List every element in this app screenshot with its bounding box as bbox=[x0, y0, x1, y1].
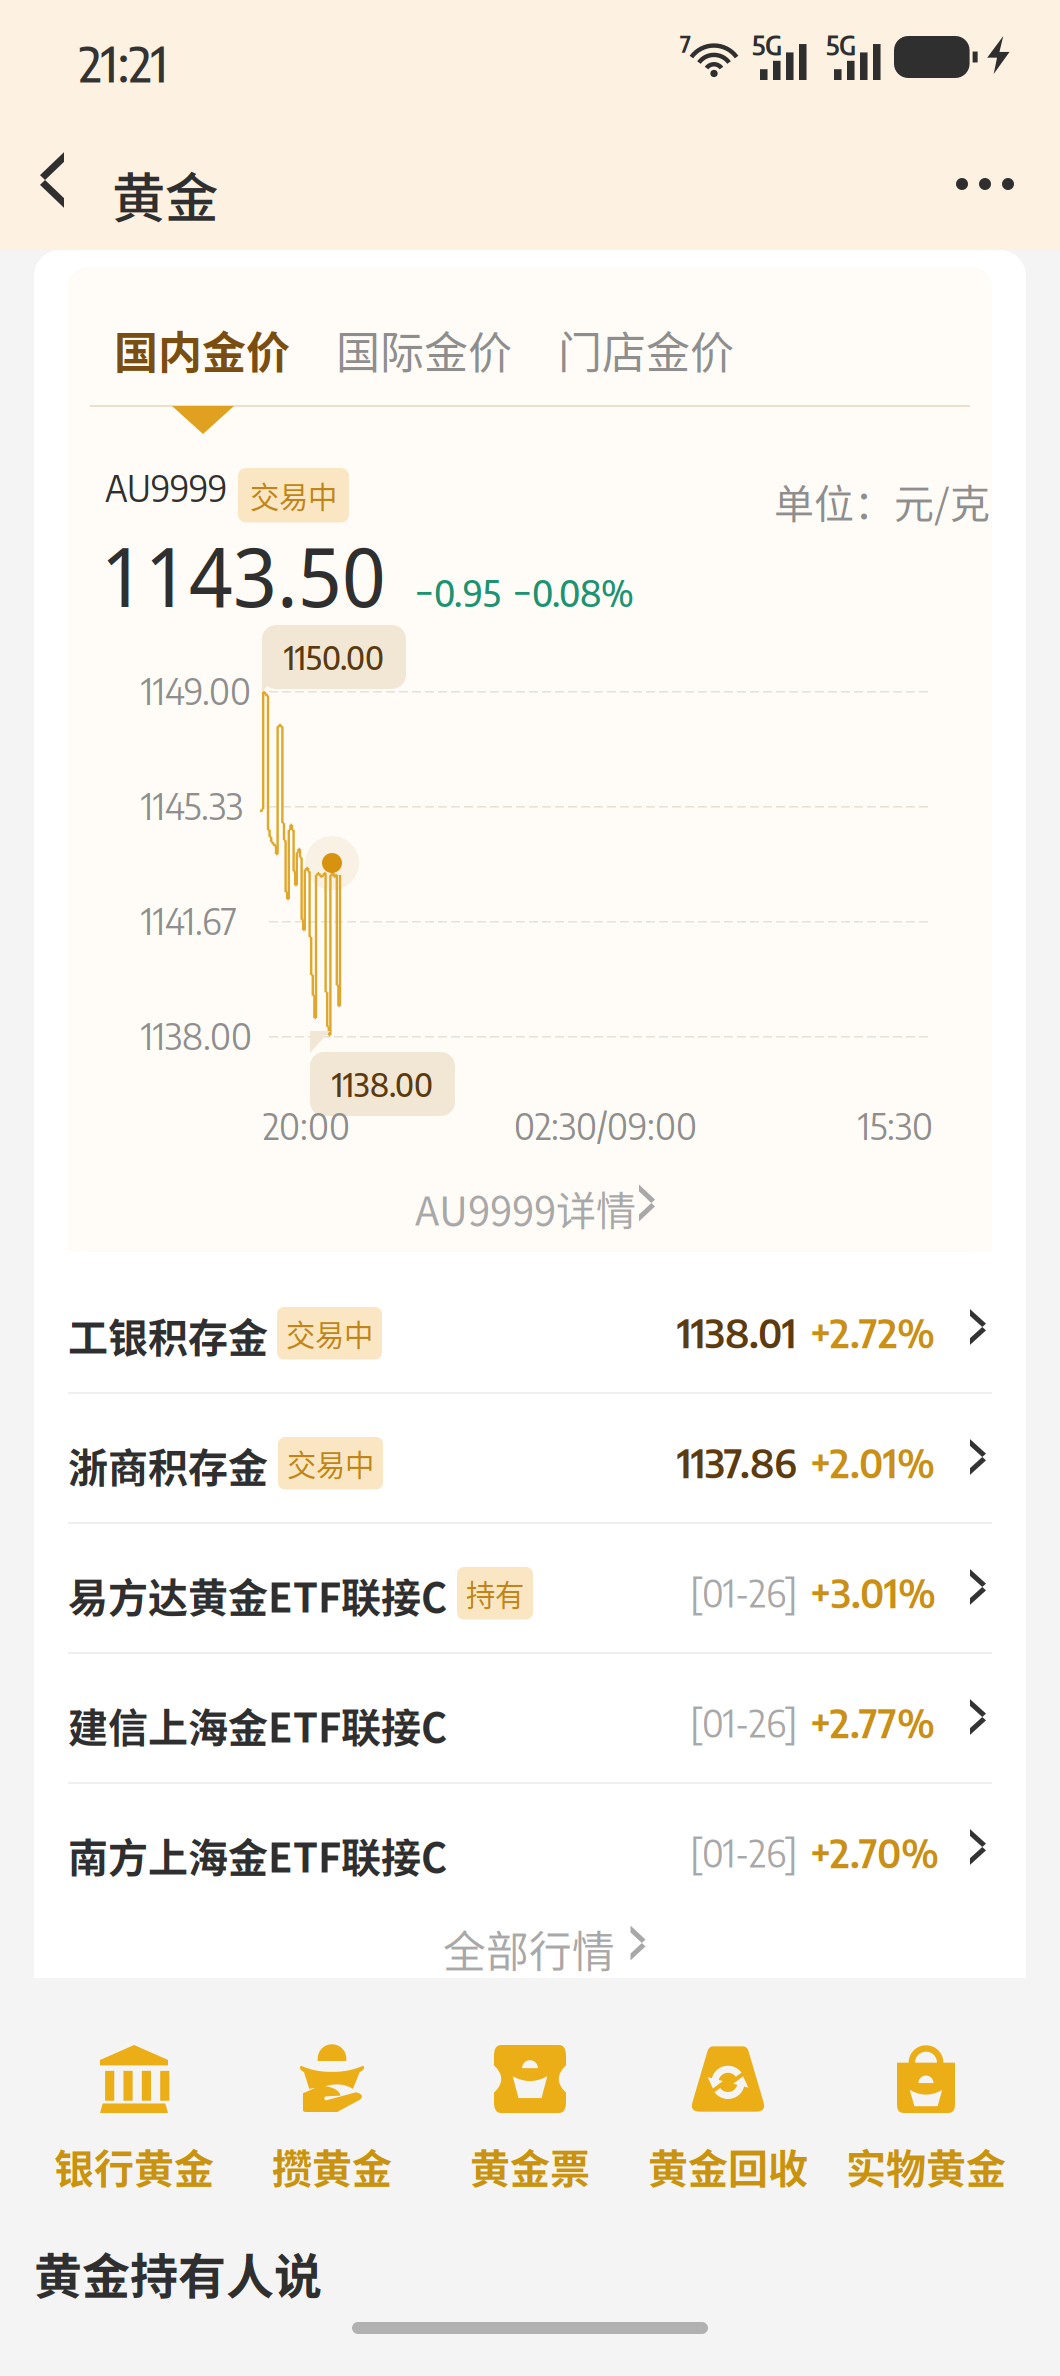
staticText: 1143.50 bbox=[101, 520, 386, 631]
staticText: 1138.00 bbox=[332, 1064, 433, 1104]
button[interactable]: 实物黄金 bbox=[827, 2000, 1025, 2212]
button[interactable]: 黄金票 bbox=[431, 2000, 629, 2212]
staticText: 1150.00 bbox=[284, 637, 384, 677]
staticText: 1137.86 bbox=[677, 1437, 797, 1487]
staticText: 5G bbox=[826, 28, 856, 61]
staticText: 黄金回收 bbox=[648, 2137, 808, 2195]
staticText: 交易中 bbox=[286, 1312, 373, 1354]
staticText: −0.08% bbox=[513, 570, 634, 615]
staticText: +3.01% bbox=[810, 1567, 936, 1617]
button[interactable]: 南方上海金ETF联接C bbox=[34, 1782, 1026, 1912]
staticText: [01-26] bbox=[690, 1829, 798, 1876]
staticText: 1149.00 bbox=[141, 668, 251, 713]
staticText: 1138.01 bbox=[677, 1307, 796, 1357]
staticText: 15:30 bbox=[858, 1103, 933, 1148]
staticText: 21:21 bbox=[79, 33, 168, 93]
button[interactable]: 银行黄金 bbox=[35, 2000, 233, 2212]
button[interactable]: 建信上海金ETF联接C bbox=[34, 1652, 1026, 1782]
button[interactable]: 攒黄金 bbox=[233, 2000, 431, 2212]
staticText: 100 bbox=[906, 44, 955, 84]
staticText: 单位：元/克 bbox=[774, 472, 990, 530]
staticText: 实物黄金 bbox=[846, 2137, 1006, 2195]
staticText: 20:00 bbox=[263, 1103, 350, 1148]
button[interactable]: 返回 bbox=[8, 122, 116, 238]
staticText: 建信上海金ETF联接C bbox=[68, 1696, 447, 1754]
button[interactable]: 国际金价 bbox=[320, 309, 520, 389]
staticText: 攒黄金 bbox=[272, 2137, 392, 2195]
staticText: 黄金持有人说 bbox=[34, 2238, 322, 2307]
staticText: AU9999详情 bbox=[415, 1179, 636, 1237]
staticText: 黄金 bbox=[112, 156, 218, 233]
staticText: 1145.33 bbox=[141, 783, 243, 828]
staticText: +2.72% bbox=[810, 1307, 935, 1357]
staticText: 5G bbox=[752, 28, 782, 61]
button[interactable]: 浙商积存金 bbox=[34, 1392, 1026, 1522]
staticText: 工银积存金 bbox=[68, 1306, 268, 1364]
staticText: 02:30/09:00 bbox=[514, 1103, 697, 1148]
staticText: −0.95 bbox=[415, 570, 501, 615]
staticText: 1138.00 bbox=[141, 1013, 252, 1058]
button[interactable]: AU9999详情 bbox=[68, 1163, 992, 1251]
staticText: 国内金价 bbox=[114, 318, 290, 382]
button[interactable]: 门店金价 bbox=[542, 309, 742, 389]
staticText: 交易中 bbox=[287, 1442, 374, 1484]
staticText: 门店金价 bbox=[558, 318, 734, 382]
staticText: 银行黄金 bbox=[54, 2137, 214, 2195]
staticText: +2.01% bbox=[810, 1437, 935, 1487]
button[interactable]: 工银积存金 bbox=[34, 1262, 1026, 1392]
staticText: 南方上海金ETF联接C bbox=[68, 1826, 447, 1884]
button[interactable]: 全部行情 bbox=[34, 1910, 1026, 1976]
button[interactable]: 黄金回收 bbox=[629, 2000, 827, 2212]
staticText: +2.70% bbox=[810, 1827, 939, 1877]
staticText: 易方达黄金ETF联接C bbox=[68, 1566, 447, 1624]
staticText: 全部行情 bbox=[443, 1918, 615, 1980]
staticText: +2.77% bbox=[810, 1697, 935, 1747]
staticText: [01-26] bbox=[690, 1569, 798, 1616]
staticText: 交易中 bbox=[250, 474, 337, 516]
staticText: [01-26] bbox=[690, 1699, 798, 1746]
staticText: 1141.67 bbox=[141, 898, 237, 943]
staticText: 国际金价 bbox=[336, 318, 512, 382]
staticText: 黄金票 bbox=[470, 2137, 590, 2195]
staticText: 持有 bbox=[466, 1572, 524, 1614]
button[interactable]: 易方达黄金ETF联接C bbox=[34, 1522, 1026, 1652]
staticText: 7 bbox=[680, 28, 691, 58]
button[interactable]: 国内金价 bbox=[98, 309, 298, 389]
staticText: AU9999 bbox=[105, 465, 227, 510]
staticText: 浙商积存金 bbox=[68, 1436, 268, 1494]
button[interactable]: 更多 bbox=[928, 122, 1044, 238]
